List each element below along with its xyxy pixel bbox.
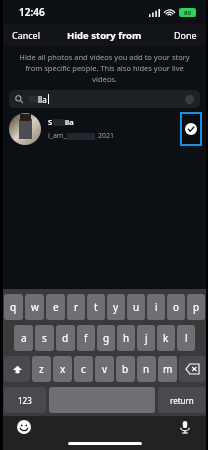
button[interactable]: Dictation [178,420,192,434]
staticText: b [122,362,129,376]
staticText: h [123,331,130,345]
button[interactable]: x [53,356,72,382]
button[interactable]: c [74,356,93,382]
button[interactable]: lla [9,90,200,108]
button[interactable]: Selected [182,114,200,144]
button[interactable]: Backspace [179,356,205,382]
staticText: lla [65,117,74,127]
staticText: return [170,395,194,406]
button[interactable]: Cancel [3,26,50,44]
staticText: g [103,331,110,345]
button[interactable]: g [97,325,115,351]
button[interactable]: e [46,294,65,320]
button[interactable]: i [147,294,165,320]
staticText: t [94,300,98,314]
staticText: Done [174,29,197,41]
button[interactable]: r [67,294,85,320]
staticText: s [42,331,47,345]
staticText: w [31,300,39,314]
button[interactable]: 123 [4,387,46,413]
staticText: q [10,300,17,314]
staticText: y [113,300,119,314]
button[interactable]: s [35,325,54,351]
staticText: 12:46 [19,5,45,19]
staticText: f [84,331,88,345]
staticText: Cancel [12,29,41,41]
button[interactable]: k [157,325,175,351]
button[interactable]: m [158,356,177,382]
staticText: r [74,300,79,314]
staticText: j [145,331,148,345]
button[interactable]: n [137,356,156,382]
button[interactable]: w [25,294,44,320]
button[interactable]: return [158,387,205,413]
staticText: 123 [18,395,32,406]
button[interactable]: p [187,294,205,320]
button[interactable]: Clear search [185,95,194,104]
button[interactable]: v [95,356,114,382]
button[interactable]: Done [165,26,206,44]
button[interactable]: Emoji keyboard [17,420,31,434]
button[interactable]: b [116,356,135,382]
staticText: a [21,331,27,345]
button[interactable]: o [167,294,185,320]
staticText: v [102,362,108,376]
staticText: c [81,362,86,376]
button[interactable]: d [56,325,75,351]
staticText: d [62,331,69,345]
button[interactable]: j [137,325,155,351]
staticText: S [48,117,53,127]
button[interactable]: y [107,294,125,320]
button[interactable]: h [117,325,135,351]
staticText: Hide story from [67,29,142,42]
staticText: m [163,362,173,376]
button[interactable]: Shift [4,356,30,382]
staticText: Hide all photos and videos you add to yo… [19,52,190,84]
staticText: lla [38,94,47,105]
staticText: i_am_ [48,131,67,141]
button[interactable]: z [32,356,51,382]
button[interactable]: a [14,325,33,351]
button[interactable]: q [4,294,23,320]
staticText: z [39,362,44,376]
button[interactable]: f [77,325,95,351]
staticText: 2021 [98,131,115,141]
staticText: p [193,300,200,314]
button[interactable]: t [87,294,105,320]
button[interactable]: u [127,294,145,320]
button[interactable]: l [177,325,195,351]
staticText: k [163,331,169,345]
staticText: 80 [184,9,191,17]
staticText: n [143,362,150,376]
button[interactable]: S [3,108,206,150]
staticText: x [60,362,66,376]
staticText: i [155,300,158,314]
staticText: l [185,331,188,345]
staticText: u [133,300,140,314]
staticText: e [53,300,59,314]
staticText: o [173,300,180,314]
